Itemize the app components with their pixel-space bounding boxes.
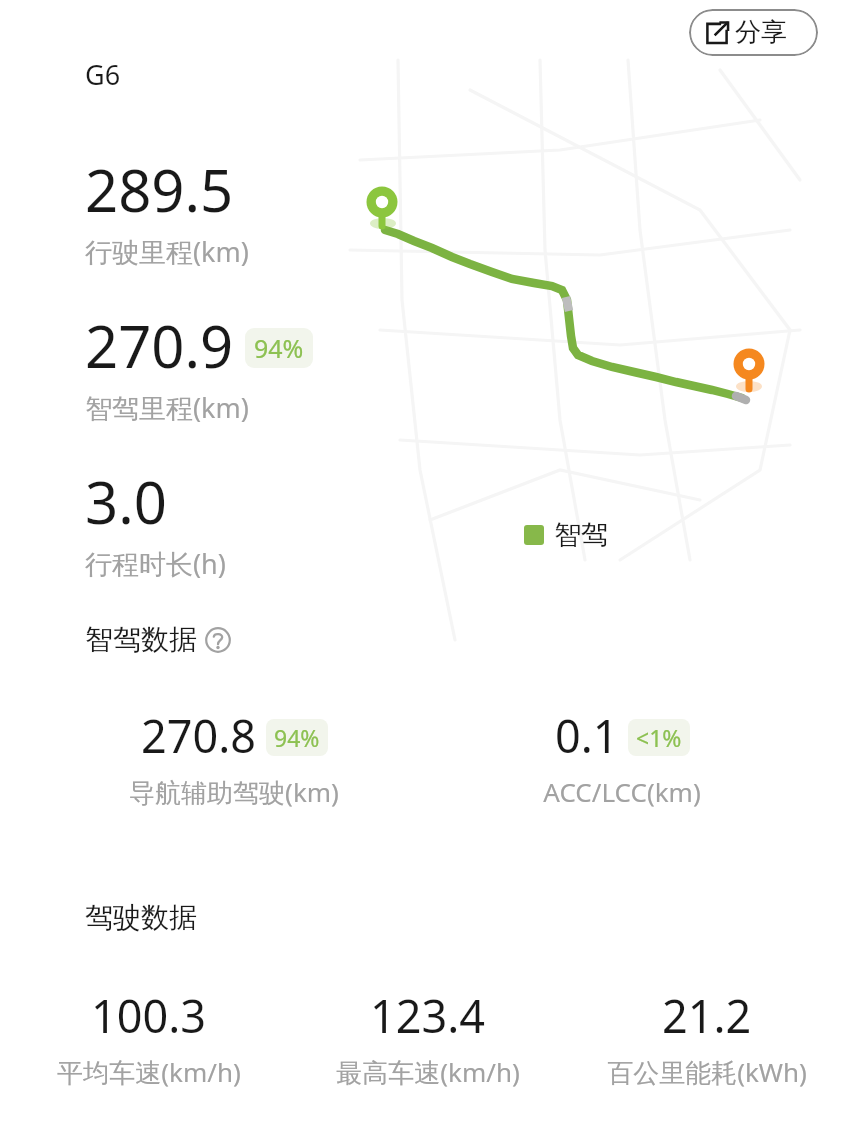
staticText: 分享: [735, 16, 787, 49]
other: 帮助: [205, 627, 231, 653]
button[interactable]: 270.8: [40, 705, 428, 810]
staticText: 百公里能耗(kWh): [607, 1054, 807, 1090]
button[interactable]: 智驾数据: [85, 622, 231, 657]
staticText: 94%: [254, 331, 304, 365]
staticText: ACC/LCC(km): [543, 774, 701, 809]
staticText: 智驾里程(km): [85, 389, 249, 426]
button[interactable]: 100.3: [10, 985, 288, 1090]
staticText: 导航辅助驾驶(km): [129, 774, 339, 810]
staticText: G6: [85, 56, 121, 93]
staticText: 最高车速(km/h): [336, 1054, 520, 1090]
button[interactable]: 21.2: [567, 985, 846, 1090]
staticText: 3.0: [85, 462, 167, 541]
staticText: 270.8: [141, 705, 257, 766]
staticText: 智驾: [554, 518, 608, 552]
staticText: <1%: [636, 722, 682, 753]
staticText: 94%: [274, 722, 320, 753]
button[interactable]: 123.4: [288, 985, 567, 1090]
staticText: 智驾数据: [85, 622, 197, 657]
staticText: 21.2: [662, 985, 752, 1046]
staticText: 行程时长(h): [85, 545, 226, 582]
staticText: 驾驶数据: [85, 900, 197, 935]
button[interactable]: 分享: [689, 9, 818, 56]
staticText: 289.5: [85, 150, 234, 229]
button[interactable]: 0.1: [428, 705, 816, 809]
staticText: 0.1: [555, 705, 619, 766]
staticText: 行驶里程(km): [85, 233, 249, 270]
staticText: 100.3: [91, 985, 207, 1046]
staticText: 270.9: [85, 306, 234, 385]
staticText: 123.4: [370, 985, 486, 1046]
staticText: 平均车速(km/h): [57, 1054, 241, 1090]
